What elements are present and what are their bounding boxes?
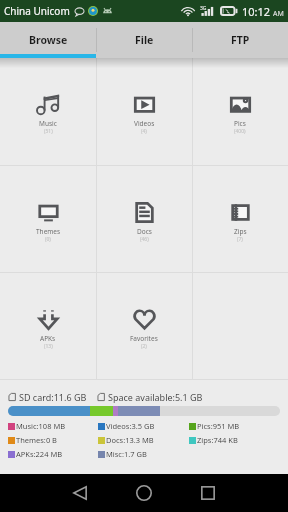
staticText: (2) [141, 343, 147, 350]
staticText: Videos [134, 119, 155, 128]
staticText: Zips [234, 227, 247, 236]
staticText: Pics:951 MB [197, 421, 240, 431]
button[interactable]: Browse [0, 22, 96, 58]
button[interactable]: Home [125, 474, 163, 512]
button[interactable]: Recent apps [189, 474, 227, 512]
staticText: APKs:224 MB [16, 449, 63, 459]
staticText: (4) [141, 128, 147, 135]
staticText: APKs [40, 334, 56, 343]
staticText: 3G [200, 5, 207, 12]
staticText: China Unicom [4, 4, 70, 18]
staticText: Themes:0 B [16, 435, 57, 445]
staticText: (7) [237, 236, 243, 243]
button[interactable]: FTP [192, 22, 288, 58]
button[interactable]: Favorites [96, 273, 192, 379]
staticText: (51) [44, 128, 53, 135]
staticText: FTP [231, 33, 250, 47]
staticText: 10:12 [242, 4, 271, 19]
staticText: Browse [29, 33, 68, 47]
staticText: Space available:5.1 GB [108, 391, 203, 403]
staticText: SD card:11.6 GB [19, 391, 87, 403]
staticText: Docs:13.3 MB [106, 435, 154, 445]
staticText: AM [273, 9, 284, 19]
staticText: Pics [234, 119, 246, 128]
staticText: File [135, 33, 154, 47]
staticText: Docs [137, 227, 152, 236]
button[interactable]: Music [0, 58, 96, 165]
button[interactable]: Themes [0, 166, 96, 272]
staticText: Misc:1.7 GB [106, 449, 147, 459]
button[interactable]: Docs [96, 166, 192, 272]
button[interactable]: Videos [96, 58, 192, 165]
button[interactable]: Back [61, 474, 99, 512]
button[interactable]: Zips [192, 166, 288, 272]
staticText: Favorites [130, 334, 158, 343]
staticText: (46) [140, 236, 149, 243]
button[interactable]: APKs [0, 273, 96, 379]
staticText: Music [39, 119, 57, 128]
button[interactable]: File [96, 22, 192, 58]
button[interactable]: Pics [192, 58, 288, 165]
staticText: Themes [36, 227, 61, 236]
staticText: Videos:3.5 GB [106, 421, 155, 431]
staticText: (13) [44, 343, 53, 350]
staticText: Music:108 MB [16, 421, 66, 431]
staticText: Zips:744 KB [197, 435, 238, 445]
staticText: (0) [45, 236, 51, 243]
staticText: (400) [234, 128, 246, 135]
